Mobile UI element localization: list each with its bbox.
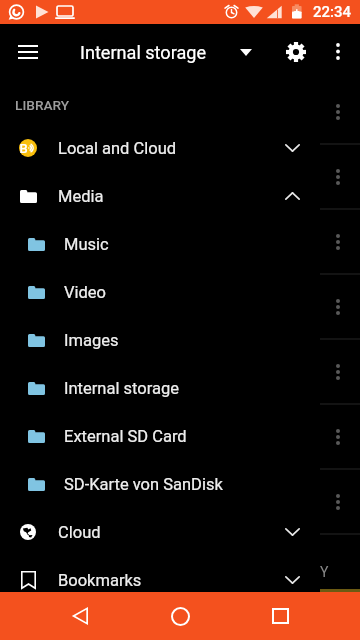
staticText: Cloud [58,523,101,542]
button[interactable]: Video [0,268,320,316]
staticText: Video [64,283,106,302]
button[interactable]: Bookmarks [0,556,320,604]
button[interactable]: Home [152,592,208,640]
staticText: External SD Card [64,427,187,446]
button[interactable]: Settings [272,28,320,76]
button[interactable]: Images [0,316,320,364]
button[interactable]: SD-Karte von SanDisk [0,460,320,508]
staticText: Internal storage [80,42,207,63]
button[interactable]: Open navigation drawer [4,28,52,76]
staticText: Local and Cloud [58,139,177,158]
button[interactable]: Music [0,220,320,268]
staticText: LIBRARY [15,97,70,113]
staticText: B [19,141,28,156]
staticText: Media [58,187,104,206]
staticText: Bookmarks [58,571,142,590]
staticText: Internal storage [64,379,179,398]
button[interactable]: Back [52,592,108,640]
button[interactable]: Change storage [230,28,262,76]
staticText: SD-Karte von SanDisk [64,475,223,494]
button[interactable]: Internal storage [0,364,320,412]
staticText: 22:34 [313,3,352,21]
staticText: Music [64,235,109,254]
button[interactable]: Recent apps [252,592,308,640]
button[interactable]: Media [0,172,320,220]
staticText: Images [64,331,119,350]
button[interactable]: External SD Card [0,412,320,460]
button[interactable]: B [0,124,320,172]
button[interactable]: Cloud [0,508,320,556]
staticText: Y [320,564,329,580]
button[interactable]: More options [316,28,360,76]
